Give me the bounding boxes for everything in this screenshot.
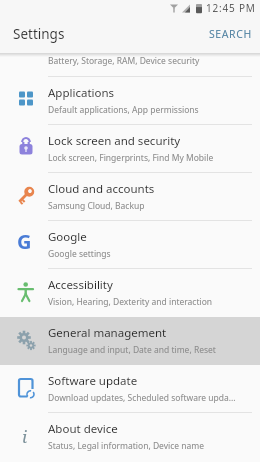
staticText: Cloud and accounts: [48, 181, 155, 197]
staticText: Settings: [13, 25, 65, 43]
button[interactable]: Applications: [0, 77, 260, 125]
button[interactable]: Lock screen and security: [0, 125, 260, 173]
staticText: Language and input, Date and time, Reset: [48, 344, 216, 356]
staticText: About device: [48, 421, 118, 437]
staticText: Google: [48, 229, 87, 245]
button[interactable]: General management: [0, 317, 260, 365]
staticText: 12:45 PM: [206, 1, 256, 15]
button[interactable]: Accessibility: [0, 269, 260, 317]
staticText: General management: [48, 325, 167, 341]
staticText: Default applications, App permissions: [48, 104, 199, 116]
staticText: Download updates, Scheduled software upd…: [48, 392, 236, 404]
staticText: i: [22, 425, 28, 448]
button[interactable]: SEARCH: [209, 15, 252, 53]
staticText: Accessibility: [48, 277, 113, 293]
button[interactable]: i: [0, 413, 260, 462]
staticText: Applications: [48, 85, 115, 101]
staticText: Google settings: [48, 248, 111, 260]
staticText: Battery, Storage, RAM, Device security: [48, 55, 200, 67]
button[interactable]: G: [0, 221, 260, 269]
staticText: SEARCH: [209, 27, 252, 41]
staticText: G: [17, 228, 32, 255]
button[interactable]: Software update: [0, 365, 260, 413]
staticText: Status, Legal information, Device name: [48, 440, 205, 452]
staticText: Lock screen, Fingerprints, Find My Mobil…: [48, 152, 214, 164]
staticText: Vision, Hearing, Dexterity and interacti…: [48, 296, 213, 308]
staticText: Software update: [48, 373, 138, 389]
staticText: Lock screen and security: [48, 133, 181, 149]
staticText: Samsung Cloud, Backup: [48, 200, 145, 212]
button[interactable]: Cloud and accounts: [0, 173, 260, 221]
